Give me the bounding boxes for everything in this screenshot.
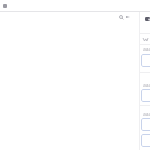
- button[interactable]: Menu: [3, 4, 7, 8]
- button[interactable]: Search: [119, 15, 124, 20]
- button[interactable]: Send: [126, 15, 130, 19]
- button[interactable]: Suggestion card: [141, 54, 150, 67]
- staticText: aaaa: [143, 111, 150, 118]
- button[interactable]: Suggestion card: [141, 118, 150, 131]
- button[interactable]: Suggestion card: [141, 89, 150, 102]
- button[interactable]: Assistant: [145, 17, 150, 21]
- staticText: aaaa: [143, 82, 150, 89]
- button[interactable]: Insights: [143, 38, 148, 41]
- button[interactable]: Suggestion card: [141, 134, 150, 147]
- staticText: aaaa: [143, 46, 150, 53]
